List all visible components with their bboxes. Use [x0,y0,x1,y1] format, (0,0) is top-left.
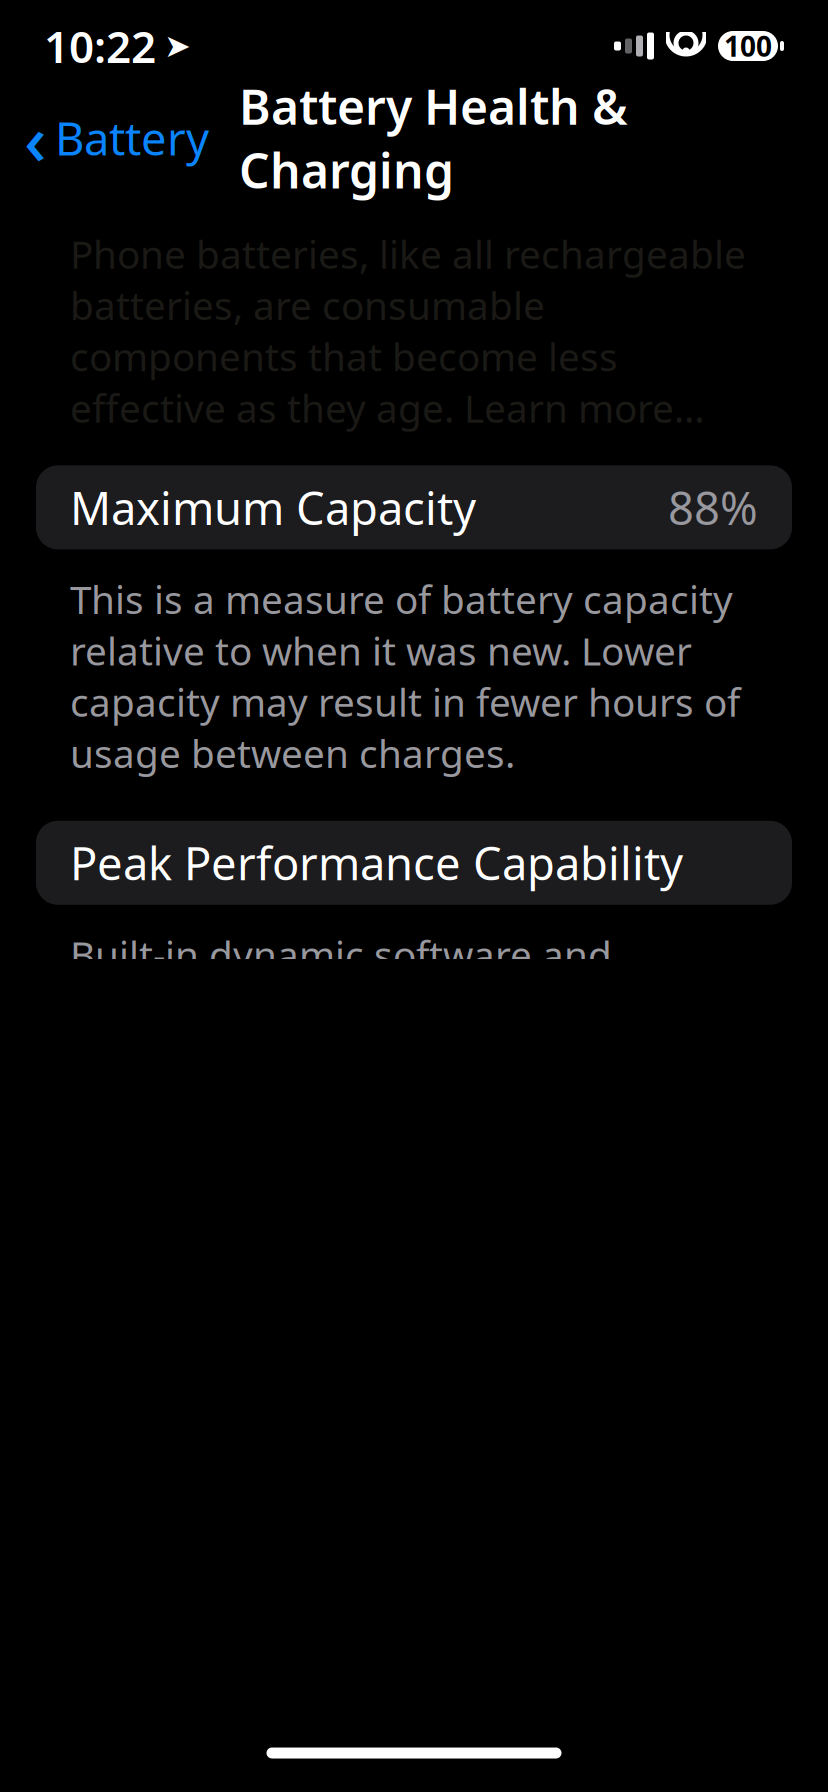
staticText: Phone batteries, like all rechargeable b… [70,228,746,433]
staticText: Built-in dynamic software and hardware s… [70,929,715,1185]
staticText: Battery Health & Charging [239,74,628,202]
staticText: ‹ [24,92,47,184]
staticText: Battery [55,108,209,168]
button[interactable]: ‹ [0,84,209,192]
button[interactable]: Maximum Capacity [36,465,792,549]
staticText: 100 [724,27,772,65]
button[interactable]: Peak Performance Capability [36,821,792,905]
staticText: Maximum Capacity [70,477,476,537]
staticText: Peak Performance Capability [70,833,683,893]
staticText: This is a measure of battery capacity re… [70,573,740,779]
staticText: 88% [668,477,758,537]
staticText: ➤ [164,28,191,64]
staticText: 10:22 [44,17,156,75]
